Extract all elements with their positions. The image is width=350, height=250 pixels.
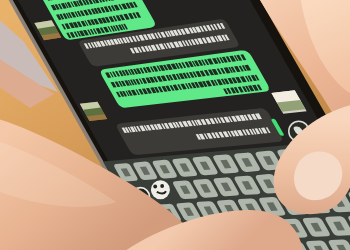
button[interactable]: Photo of hands holding a phone showing a… — [0, 0, 350, 250]
other: Photo of hands holding a phone showing a… — [0, 0, 350, 250]
